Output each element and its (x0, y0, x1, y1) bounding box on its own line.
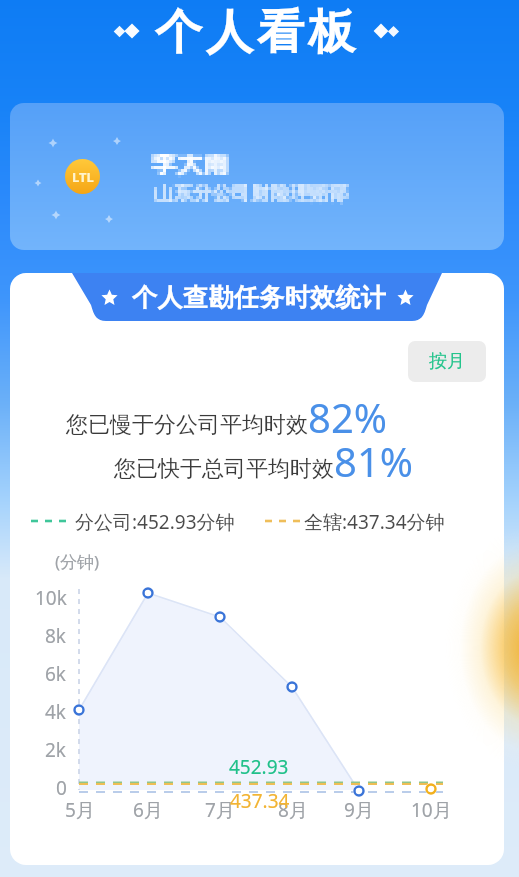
staticText: 分公司:452.93分钟 (75, 509, 235, 533)
staticText: 437.34 (230, 788, 290, 814)
button[interactable]: 按月 (408, 341, 486, 382)
staticText: 2k (45, 737, 67, 761)
staticText: 10月 (411, 797, 452, 821)
staticText: 您已快于总司平均时效 (114, 455, 334, 483)
staticText: 按月 (429, 350, 465, 373)
staticText: 全辖:437.34分钟 (304, 509, 445, 533)
staticText: LTL (72, 168, 94, 186)
staticText: 7月 (205, 797, 235, 821)
staticText: 9月 (344, 797, 374, 821)
button[interactable]: LTL (10, 103, 504, 250)
staticText: 82% (308, 390, 387, 444)
staticText: 452.93 (229, 754, 289, 780)
staticText: 81% (334, 434, 413, 488)
staticText: 8k (45, 623, 67, 647)
staticText: 8月 (278, 797, 308, 821)
staticText: 0 (56, 775, 67, 799)
staticText: (分钟) (55, 550, 100, 573)
staticText: 您已慢于分公司平均时效 (66, 411, 308, 439)
staticText: 个人看板 (153, 3, 357, 62)
staticText: 6月 (133, 797, 163, 821)
staticText: 4k (45, 699, 67, 723)
staticText: 10k (35, 585, 67, 609)
staticText: 5月 (65, 797, 95, 821)
staticText: 个人查勘任务时效统计 (132, 282, 386, 313)
staticText: 6k (45, 661, 67, 685)
